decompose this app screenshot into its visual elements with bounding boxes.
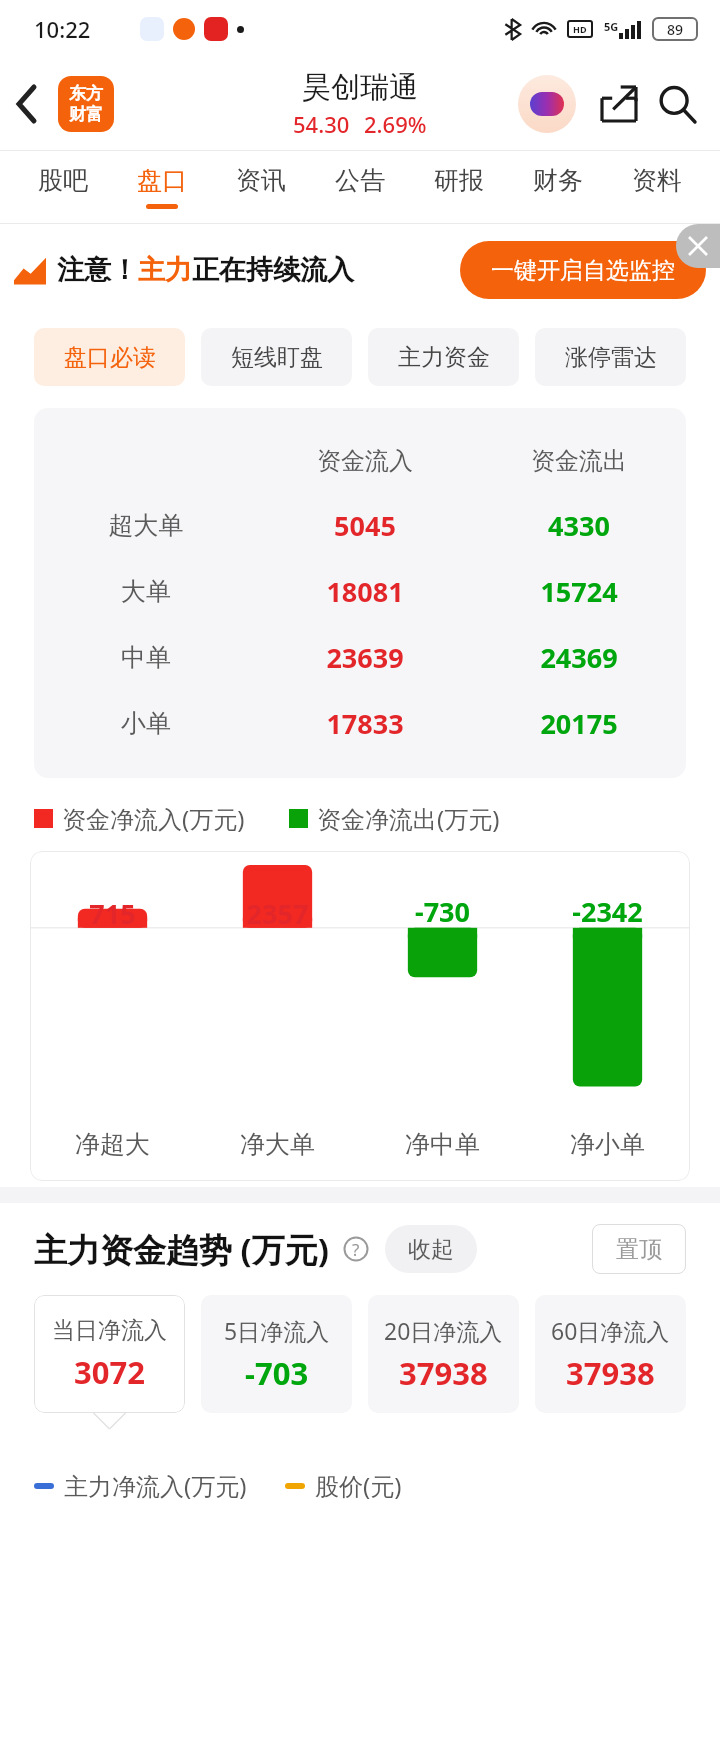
staticText: 股价(元): [315, 1469, 402, 1502]
staticText: 东方: [69, 83, 103, 104]
button[interactable]: 财务: [508, 151, 607, 223]
staticText: 主力: [138, 253, 192, 287]
button[interactable]: 盘口必读: [34, 328, 185, 386]
staticText: -703: [245, 1352, 309, 1394]
button[interactable]: 资讯: [211, 151, 310, 223]
button[interactable]: Share: [590, 75, 648, 133]
staticText: 54.30: [293, 109, 350, 139]
staticText: 昊创瑞通: [302, 69, 418, 106]
button[interactable]: 涨停雷达: [535, 328, 686, 386]
staticText: 当日净流入: [52, 1316, 167, 1345]
staticText: 净中单: [360, 1129, 525, 1160]
staticText: 收起: [408, 1235, 454, 1264]
staticText: 10:22: [34, 14, 91, 44]
staticText: 89: [667, 20, 684, 39]
staticText: 23639: [258, 639, 472, 676]
button[interactable]: 收起: [385, 1225, 477, 1273]
staticText: 715: [30, 895, 195, 932]
button[interactable]: Back: [0, 77, 54, 131]
staticText: 大单: [34, 576, 258, 607]
staticText: 短线盯盘: [231, 343, 323, 372]
staticText: -2342: [525, 893, 690, 930]
button[interactable]: 20日净流入: [368, 1295, 519, 1413]
staticText: 4330: [472, 507, 686, 544]
staticText: 净大单: [195, 1129, 360, 1160]
staticText: 涨停雷达: [565, 343, 657, 372]
staticText: 17833: [258, 705, 472, 742]
button[interactable]: 公告: [310, 151, 409, 223]
staticText: 20日净流入: [384, 1315, 503, 1346]
staticText: 5045: [258, 507, 472, 544]
staticText: 财务: [533, 165, 583, 196]
staticText: HD: [573, 23, 587, 35]
button[interactable]: Help: [341, 1234, 371, 1264]
staticText: 资金流入: [258, 446, 472, 476]
staticText: 主力资金趋势 (万元): [34, 1227, 329, 1272]
button[interactable]: 短线盯盘: [201, 328, 352, 386]
staticText: 20175: [472, 705, 686, 742]
staticText: 5G: [604, 19, 619, 34]
button[interactable]: 置顶: [592, 1224, 686, 1274]
button[interactable]: 当日净流入: [34, 1295, 185, 1413]
staticText: 资讯: [236, 165, 286, 196]
staticText: 财富: [69, 104, 103, 125]
button[interactable]: 60日净流入: [535, 1295, 686, 1413]
button[interactable]: 资料: [607, 151, 706, 223]
staticText: 盘口必读: [64, 343, 156, 372]
button[interactable]: Assistant: [516, 73, 578, 135]
staticText: 24369: [472, 639, 686, 676]
staticText: 60日净流入: [551, 1315, 670, 1346]
staticText: 2.69%: [364, 109, 427, 139]
staticText: 资料: [632, 165, 682, 196]
staticText: 注意！: [57, 253, 138, 287]
button[interactable]: 盘口: [112, 151, 211, 223]
staticText: 资金净流入(万元): [62, 802, 245, 835]
staticText: 15724: [472, 573, 686, 610]
button[interactable]: Search: [648, 75, 706, 133]
staticText: 主力净流入(万元): [64, 1469, 247, 1502]
staticText: 正在持续流入: [192, 253, 354, 287]
staticText: 股吧: [38, 165, 88, 196]
button[interactable]: Close: [676, 224, 720, 268]
staticText: 37938: [399, 1352, 488, 1394]
staticText: 净小单: [525, 1129, 690, 1160]
staticText: 18081: [258, 573, 472, 610]
staticText: 盘口: [137, 165, 187, 196]
staticText: 超大单: [34, 510, 258, 541]
staticText: 资金净流出(万元): [317, 802, 500, 835]
staticText: 一键开启自选监控: [491, 256, 675, 285]
button[interactable]: 研报: [409, 151, 508, 223]
button[interactable]: 一键开启自选监控: [460, 241, 706, 299]
staticText: ?: [352, 1238, 360, 1261]
staticText: 2357: [195, 895, 360, 932]
staticText: 3072: [74, 1351, 145, 1393]
staticText: 小单: [34, 708, 258, 739]
button[interactable]: 股吧: [14, 151, 112, 223]
button[interactable]: East Money: [58, 76, 114, 132]
staticText: 5日净流入: [224, 1315, 330, 1346]
staticText: 资金流出: [472, 446, 686, 476]
staticText: 主力资金: [398, 343, 490, 372]
staticText: 公告: [335, 165, 385, 196]
button[interactable]: 主力资金: [368, 328, 519, 386]
staticText: 置顶: [616, 1235, 662, 1264]
button[interactable]: 5日净流入: [201, 1295, 352, 1413]
staticText: 37938: [566, 1352, 655, 1394]
staticText: -730: [360, 893, 525, 930]
staticText: 净超大: [30, 1129, 195, 1160]
staticText: 中单: [34, 642, 258, 673]
staticText: 研报: [434, 165, 484, 196]
